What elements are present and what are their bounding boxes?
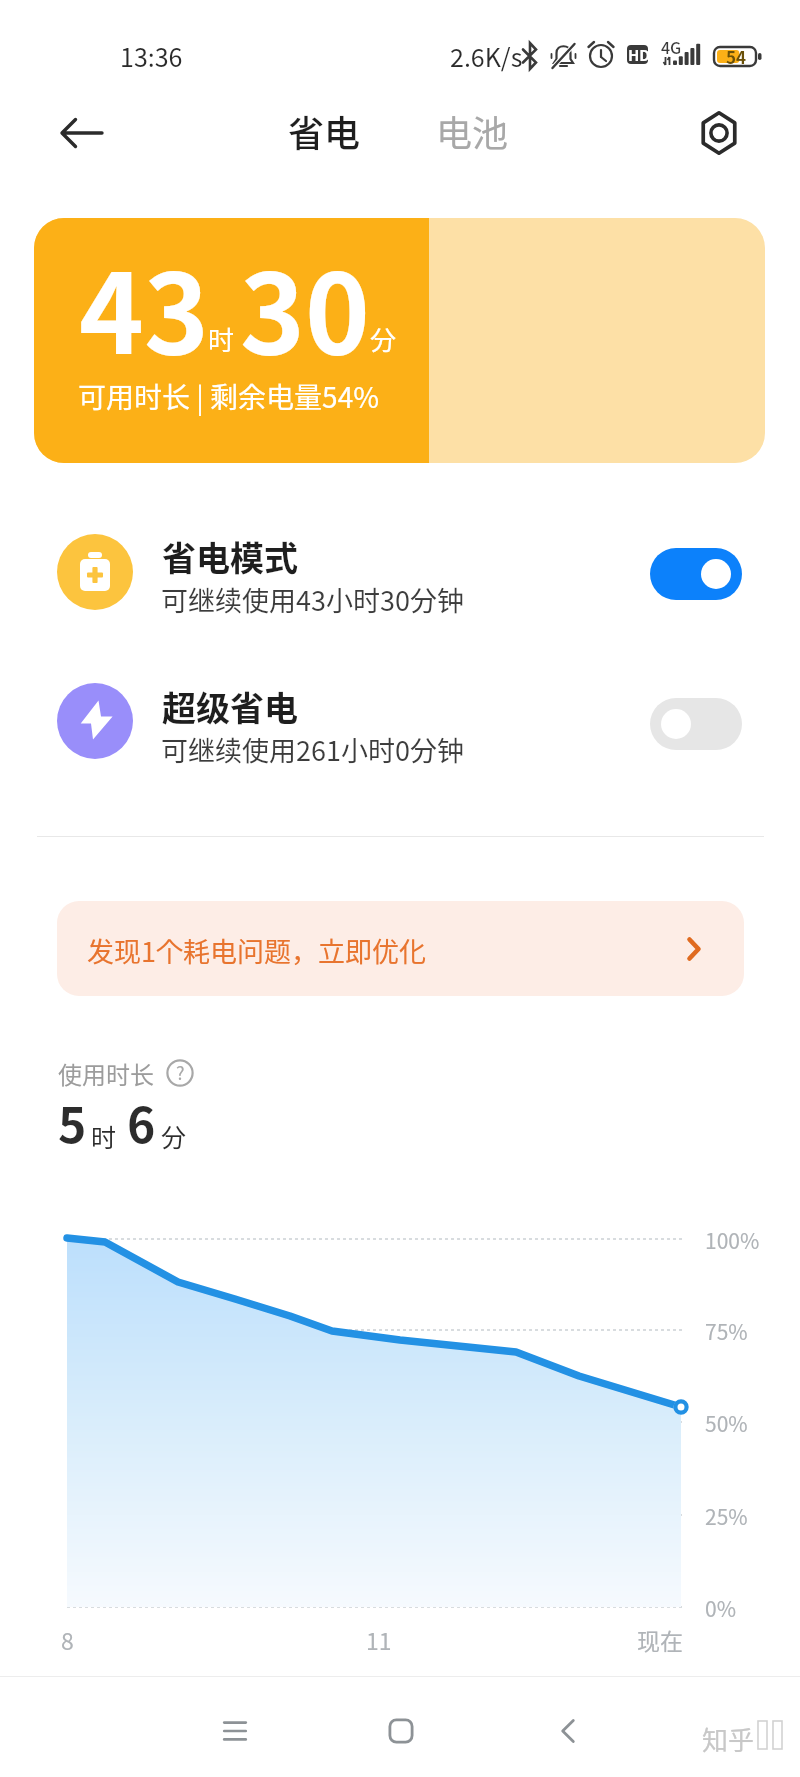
button[interactable]: Home xyxy=(367,1697,435,1765)
staticText: 使用时长 xyxy=(58,1056,154,1091)
staticText: 时 xyxy=(91,1118,117,1154)
staticText: 分 xyxy=(370,320,397,358)
staticText: 可继续使用43小时30分钟 xyxy=(161,580,464,619)
staticText: 13:36 xyxy=(120,38,183,74)
staticText: 可继续使用261小时0分钟 xyxy=(161,730,464,769)
staticText: 5 xyxy=(58,1087,87,1157)
button[interactable]: 电池 xyxy=(436,105,509,157)
staticText: 省电模式 xyxy=(162,532,298,581)
staticText: 可用时长 | 剩余电量54% xyxy=(78,376,379,417)
staticText: 发现1个耗电问题，立即优化 xyxy=(87,931,426,970)
staticText: 0% xyxy=(705,1593,736,1623)
staticText: 现在 xyxy=(637,1623,683,1656)
staticText: 100% xyxy=(705,1225,760,1255)
staticText: ? xyxy=(176,1059,185,1085)
staticText: 知乎 xyxy=(702,1720,755,1758)
staticText: 8 xyxy=(61,1623,74,1656)
staticText: HD xyxy=(628,44,651,66)
staticText: 分 xyxy=(161,1118,187,1154)
button[interactable]: Battery saver toggle on xyxy=(650,548,742,600)
staticText: 50% xyxy=(705,1408,748,1438)
button[interactable]: Help xyxy=(166,1059,194,1087)
button[interactable]: 省电 xyxy=(288,105,361,157)
staticText: 43 xyxy=(79,226,209,385)
staticText: 54 xyxy=(726,44,747,69)
staticText: 时 xyxy=(208,320,235,358)
staticText: 11 xyxy=(366,1623,392,1656)
staticText: 30 xyxy=(240,226,370,385)
staticText: 25% xyxy=(705,1501,748,1531)
button[interactable]: 43 xyxy=(34,218,765,463)
button[interactable]: Recents xyxy=(201,1697,269,1765)
button[interactable]: Settings xyxy=(685,99,753,167)
staticText: 75% xyxy=(705,1316,748,1346)
button[interactable] xyxy=(0,524,800,620)
staticText: 6 xyxy=(127,1087,156,1157)
staticText: 超级省电 xyxy=(162,682,298,731)
button[interactable] xyxy=(0,673,800,769)
staticText: 4G xyxy=(661,35,682,58)
button[interactable]: Back xyxy=(534,1697,602,1765)
button[interactable]: Ultra battery saver toggle off xyxy=(650,698,742,750)
button[interactable]: Back xyxy=(46,97,118,169)
staticText: 2.6K/s xyxy=(450,38,523,74)
button[interactable]: 发现1个耗电问题，立即优化 xyxy=(57,901,744,996)
